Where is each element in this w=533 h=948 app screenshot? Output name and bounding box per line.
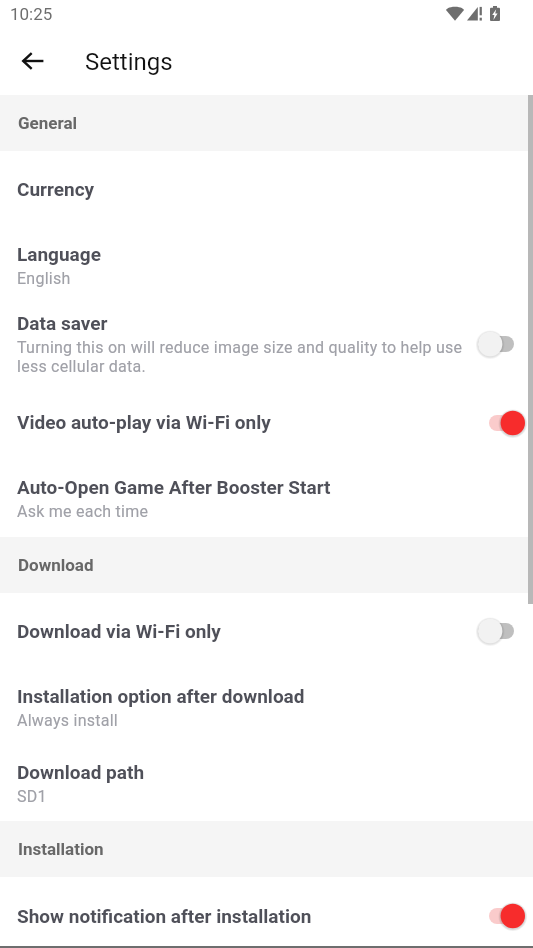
button[interactable]: Language [0,229,533,303]
staticText: Data saver [17,312,108,334]
button[interactable]: Auto-Open Game After Booster Start [0,459,533,537]
staticText: Download [18,555,94,575]
staticText: Video auto-play via Wi-Fi only [17,411,271,433]
staticText: Language [17,243,101,265]
staticText: Auto-Open Game After Booster Start [17,476,331,498]
staticText: Always install [17,711,118,730]
button[interactable]: Back [7,38,59,84]
button[interactable]: Toggle on [475,901,533,931]
staticText: Download path [17,761,145,783]
button[interactable]: Toggle on [475,408,533,438]
button[interactable]: Toggle off [475,329,533,359]
button[interactable]: Download path [0,745,533,821]
button[interactable]: Currency [0,151,533,229]
staticText: 10:25 [10,4,53,24]
staticText: Settings [85,48,173,76]
staticText: English [17,269,71,288]
button[interactable]: Installation option after download [0,670,533,745]
button[interactable]: Toggle off [475,616,533,646]
button[interactable]: Show notification after installation [0,877,533,948]
button[interactable]: Data saver [0,303,533,387]
staticText: Installation [18,839,104,859]
staticText: SD1 [17,787,47,806]
staticText: General [18,113,78,133]
staticText: Currency [17,178,95,200]
button[interactable]: Download via Wi-Fi only [0,593,533,670]
staticText: Turning this on will reduce image size a… [17,338,465,376]
button[interactable]: Video auto-play via Wi-Fi only [0,387,533,459]
staticText: Installation option after download [17,685,305,707]
staticText: Ask me each time [17,502,149,521]
staticText: Download via Wi-Fi only [17,620,221,642]
staticText: Show notification after installation [17,905,312,927]
